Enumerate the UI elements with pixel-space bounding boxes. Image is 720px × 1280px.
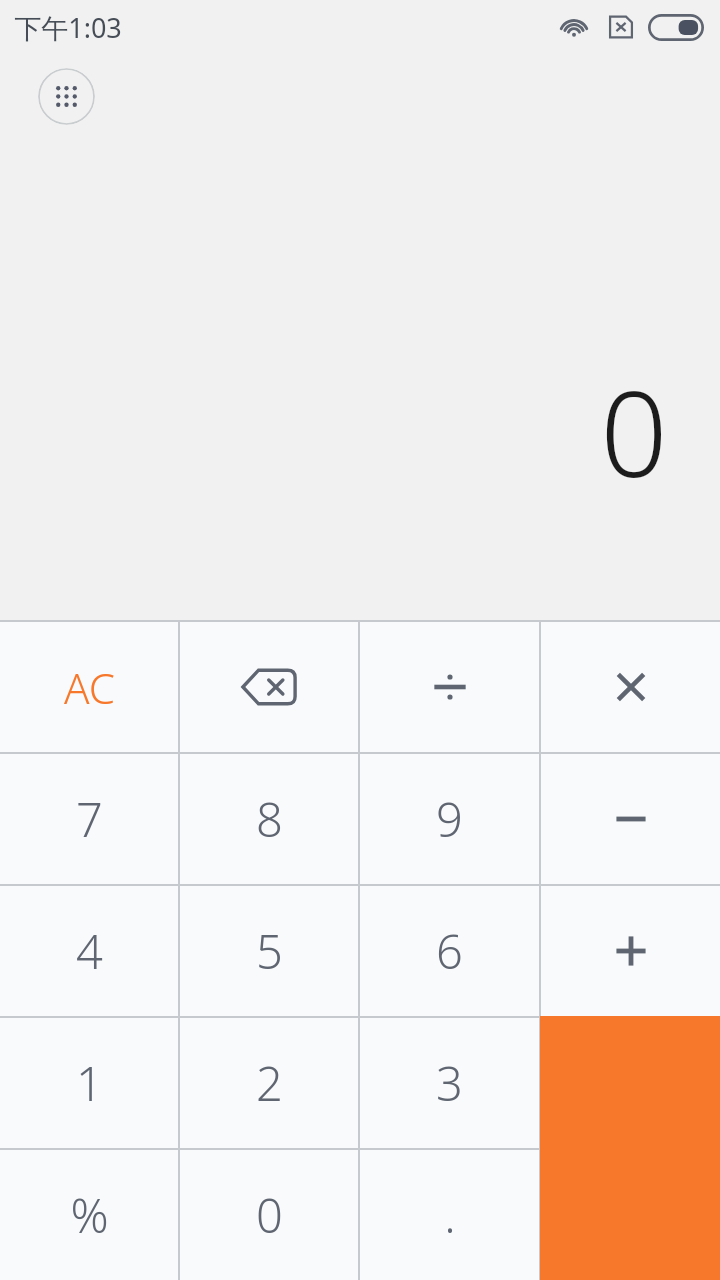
button[interactable]: 5 xyxy=(180,886,358,1016)
button[interactable]: 6 xyxy=(360,886,539,1016)
staticText: 3 xyxy=(436,1051,463,1115)
staticText: 4 xyxy=(76,919,103,983)
staticText: 0 xyxy=(256,1183,283,1247)
staticText: 7 xyxy=(76,787,103,851)
button[interactable]: Backspace xyxy=(180,622,358,752)
staticText: % xyxy=(70,1183,109,1247)
button[interactable]: Percent xyxy=(0,1150,178,1280)
staticText: . xyxy=(444,1183,456,1247)
button[interactable]: 3 xyxy=(360,1018,539,1148)
staticText: 1 xyxy=(76,1051,103,1115)
button[interactable]: Plus xyxy=(541,886,720,1016)
button[interactable]: 7 xyxy=(0,754,178,884)
button[interactable]: Multiply xyxy=(541,622,720,752)
staticText: 9 xyxy=(436,787,463,851)
staticText: AC xyxy=(64,659,115,716)
button[interactable]: 4 xyxy=(0,886,178,1016)
staticText: 0 xyxy=(600,351,668,512)
staticText: 6 xyxy=(436,919,463,983)
button[interactable]: 1 xyxy=(0,1018,178,1148)
button[interactable]: 0 xyxy=(180,1150,358,1280)
button[interactable]: Divide xyxy=(360,622,539,752)
button[interactable]: 8 xyxy=(180,754,358,884)
staticText: 5 xyxy=(256,919,283,983)
staticText: 2 xyxy=(256,1051,283,1115)
button[interactable]: 2 xyxy=(180,1018,358,1148)
button[interactable]: 9 xyxy=(360,754,539,884)
staticText: 8 xyxy=(256,787,283,851)
button[interactable]: Apps xyxy=(38,68,95,125)
button[interactable]: . xyxy=(360,1150,539,1280)
button[interactable]: Minus xyxy=(541,754,720,884)
staticText: 下午1:03 xyxy=(14,9,122,46)
button[interactable]: AC xyxy=(0,622,178,752)
